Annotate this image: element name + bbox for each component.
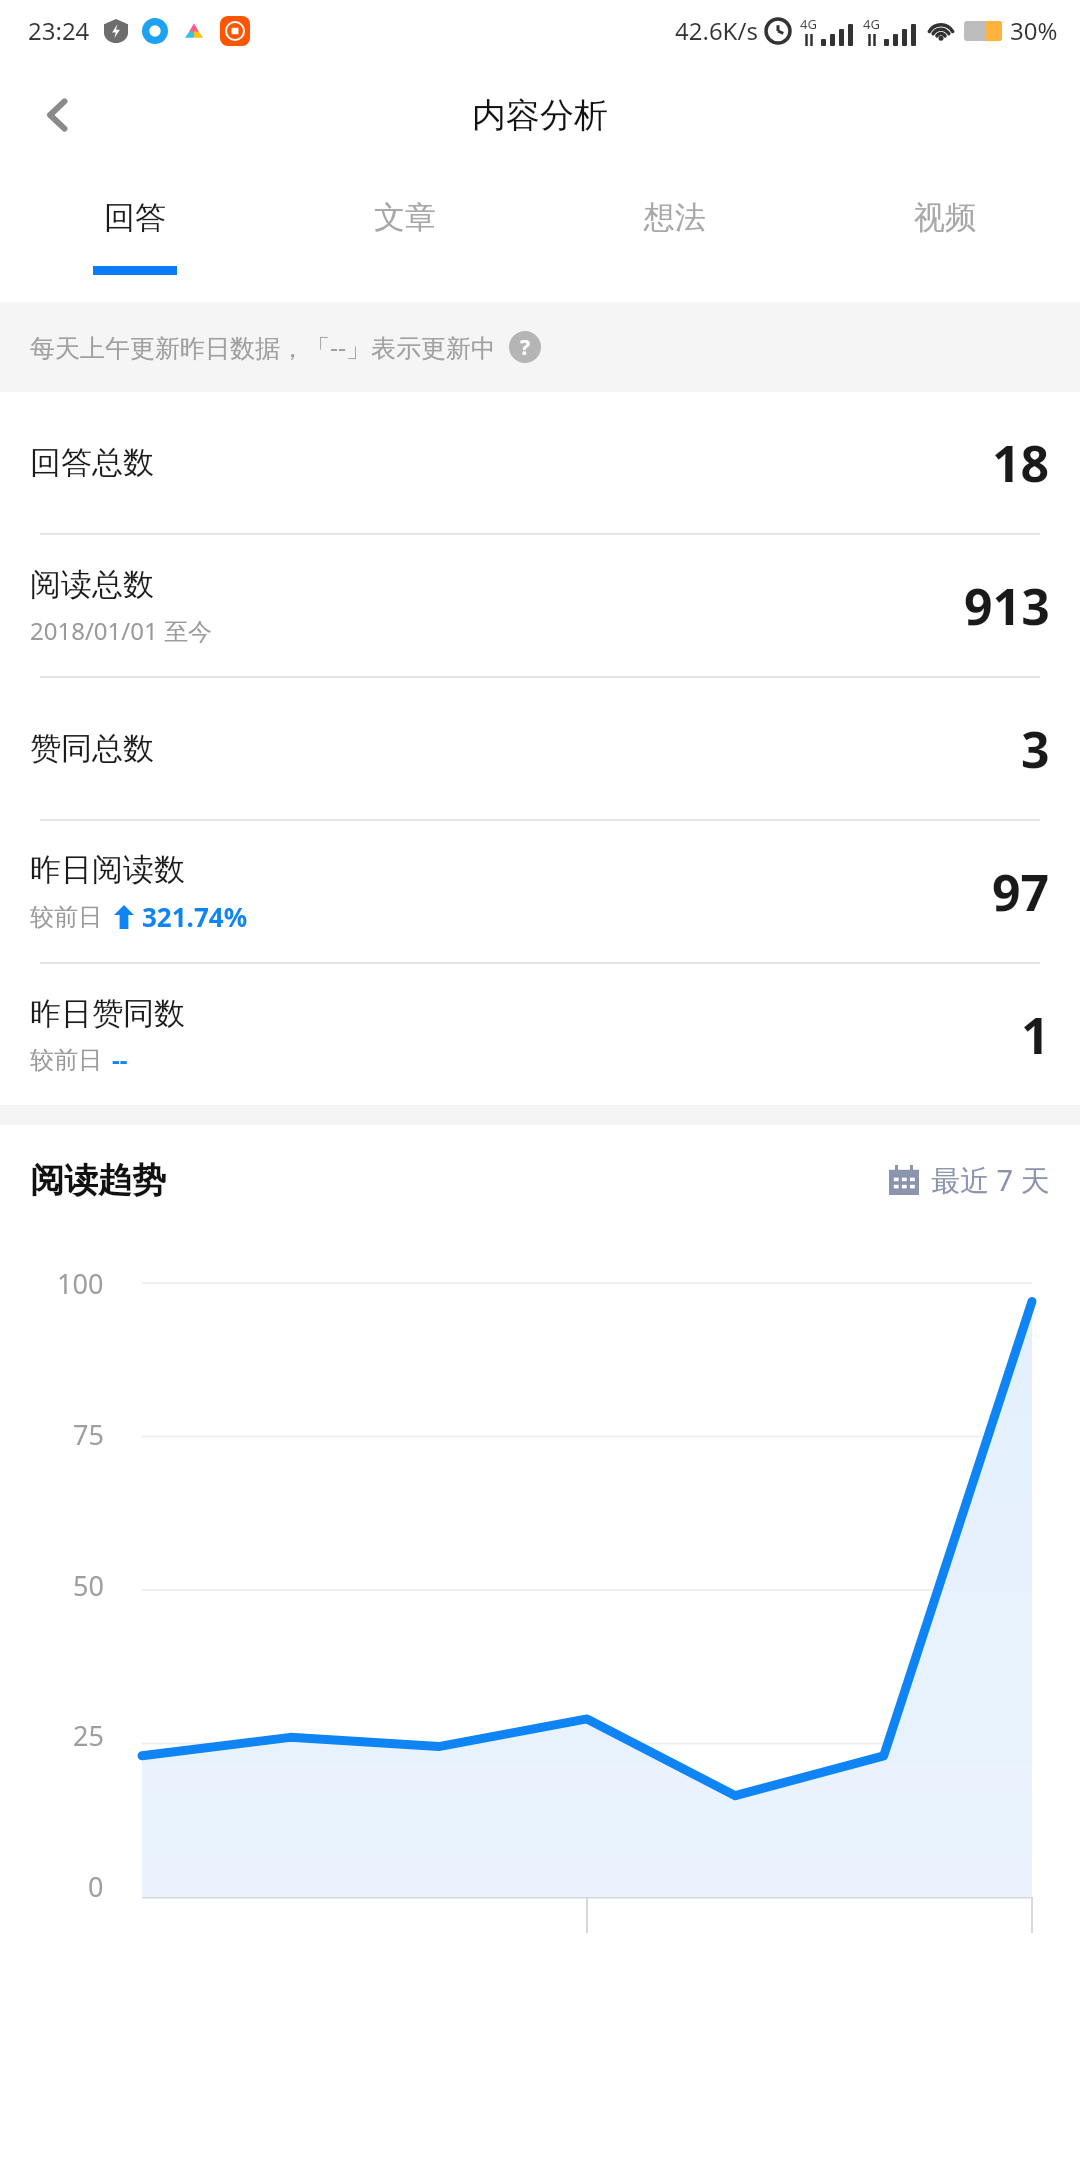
button[interactable]: 文章: [270, 170, 540, 302]
staticText: 内容分析: [472, 94, 608, 137]
button[interactable]: 回答: [0, 170, 270, 302]
staticText: 较前日: [30, 1045, 102, 1075]
staticText: 昨日赞同数: [30, 994, 185, 1033]
staticText: 321.74%: [142, 899, 248, 934]
staticText: 昨日阅读数: [30, 850, 185, 889]
staticText: 23:24: [28, 14, 90, 47]
staticText: 50: [73, 1567, 104, 1604]
staticText: 回答: [104, 198, 166, 237]
staticText: 97: [992, 858, 1050, 926]
staticText: 2018/01/01 至今: [30, 614, 212, 647]
staticText: 1: [1021, 1001, 1050, 1069]
staticText: 3: [1021, 715, 1050, 783]
staticText: 100: [57, 1265, 104, 1302]
button[interactable]: 赞同总数: [0, 678, 1080, 819]
staticText: 阅读总数: [30, 565, 154, 604]
staticText: 4G: [863, 15, 880, 33]
staticText: 25: [73, 1717, 104, 1754]
staticText: 较前日: [30, 902, 102, 932]
staticText: 913: [964, 572, 1050, 640]
button[interactable]: 想法: [540, 170, 810, 302]
button[interactable]: 最近 7 天: [889, 1160, 1050, 1200]
staticText: 18: [992, 429, 1050, 497]
button[interactable]: 阅读总数: [0, 535, 1080, 676]
staticText: 想法: [644, 198, 706, 237]
staticText: ?: [520, 333, 531, 362]
staticText: 阅读趋势: [30, 1159, 166, 1202]
button[interactable]: 昨日赞同数: [0, 964, 1080, 1105]
button[interactable]: 视频: [810, 170, 1080, 302]
staticText: 回答总数: [30, 443, 154, 482]
staticText: 42.6K/s: [675, 14, 758, 47]
staticText: 视频: [914, 198, 976, 237]
button[interactable]: 回答总数: [0, 392, 1080, 533]
staticText: 赞同总数: [30, 729, 154, 768]
staticText: 30%: [1010, 14, 1058, 47]
staticText: --: [112, 1043, 128, 1076]
staticText: 每天上午更新昨日数据，「--」表示更新中: [30, 330, 497, 364]
button[interactable]: 昨日阅读数: [0, 821, 1080, 962]
staticText: 文章: [374, 198, 436, 237]
staticText: 最近 7 天: [931, 1160, 1050, 1200]
staticText: 75: [73, 1416, 104, 1453]
button[interactable]: Help: [509, 331, 541, 363]
staticText: 0: [88, 1868, 104, 1905]
button[interactable]: Back: [20, 77, 96, 153]
staticText: 4G: [800, 15, 817, 33]
